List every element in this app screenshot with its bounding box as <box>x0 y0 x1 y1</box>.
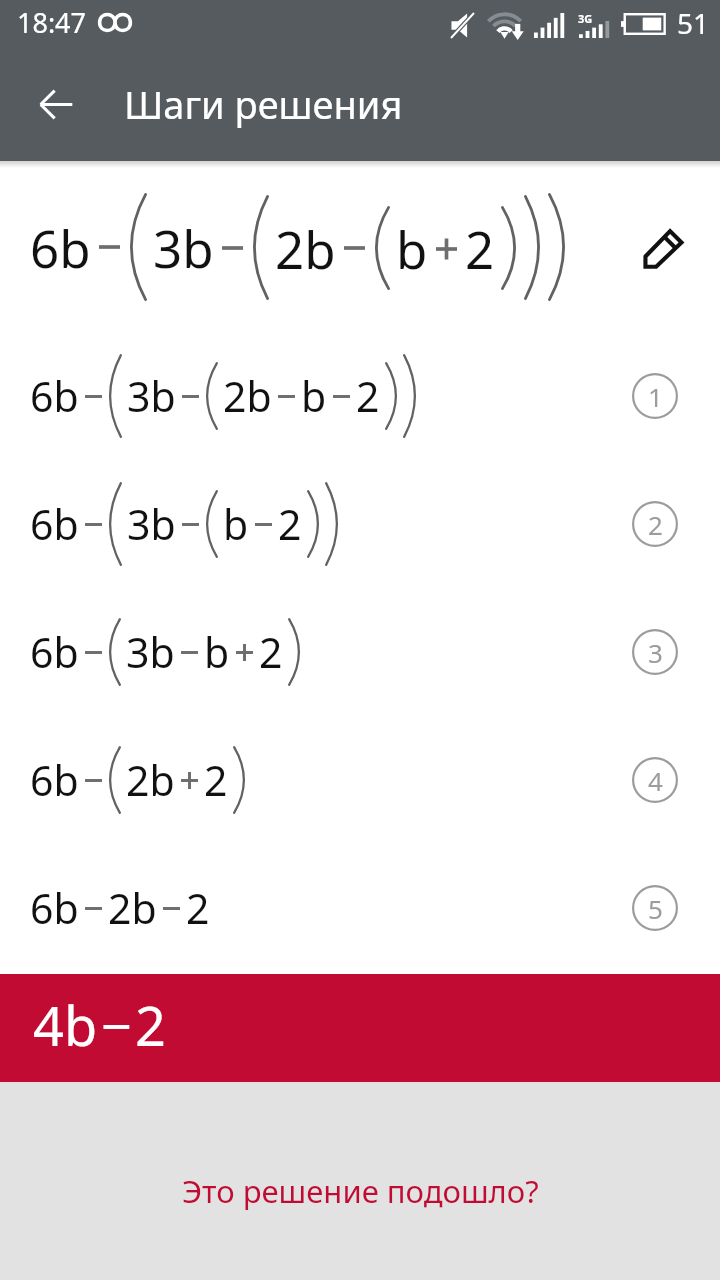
staticText: 18:47 <box>17 4 87 41</box>
staticText: Шаги решения <box>124 78 403 130</box>
staticText: Это решение подошло? <box>182 1170 539 1212</box>
staticText: 2 <box>135 988 166 1062</box>
staticText: 2b <box>223 368 272 424</box>
button[interactable]: 5 <box>625 878 685 938</box>
button[interactable]: Edit <box>625 209 701 285</box>
staticText: 5 <box>648 891 663 926</box>
button[interactable]: 4 <box>625 750 685 810</box>
staticText: 3b <box>126 624 175 680</box>
staticText: 3b <box>127 496 176 552</box>
button[interactable]: 1 <box>625 366 685 426</box>
staticText: 4b <box>33 988 98 1062</box>
button[interactable]: Back <box>18 66 94 142</box>
staticText: 6b <box>30 496 79 552</box>
staticText: b <box>204 624 230 680</box>
staticText: 2b <box>108 880 157 936</box>
button[interactable]: 6b <box>0 854 720 962</box>
staticText: 2b <box>126 752 175 808</box>
button[interactable]: 6b <box>0 342 720 450</box>
staticText: 2 <box>465 214 495 283</box>
staticText: 2 <box>204 752 228 808</box>
staticText: 3 <box>648 635 663 670</box>
staticText: 2 <box>278 496 302 552</box>
staticText: 2 <box>356 368 380 424</box>
button[interactable]: 6b <box>0 598 720 706</box>
staticText: b <box>301 368 327 424</box>
staticText: b <box>396 214 428 283</box>
staticText: 6b <box>30 213 91 282</box>
button[interactable]: Это решение подошло? <box>164 1160 557 1222</box>
staticText: 6b <box>30 368 79 424</box>
staticText: 3b <box>153 213 214 282</box>
staticText: 6b <box>30 624 79 680</box>
button[interactable]: 3 <box>625 622 685 682</box>
button[interactable]: 6b <box>0 193 720 301</box>
staticText: 1 <box>648 379 663 414</box>
staticText: 3b <box>127 368 176 424</box>
staticText: 2 <box>648 507 663 542</box>
staticText: 4 <box>648 763 663 798</box>
staticText: 6b <box>30 752 79 808</box>
staticText: 2b <box>275 214 336 283</box>
button[interactable]: 2 <box>625 494 685 554</box>
button[interactable]: 6b <box>0 726 720 834</box>
staticText: 3G <box>578 11 593 26</box>
staticText: b <box>223 496 249 552</box>
staticText: 6b <box>30 880 79 936</box>
staticText: 2 <box>259 624 283 680</box>
button[interactable]: 6b <box>0 470 720 578</box>
staticText: 2 <box>186 880 210 936</box>
staticText: − <box>101 988 132 1062</box>
staticText: 51 <box>677 4 710 42</box>
